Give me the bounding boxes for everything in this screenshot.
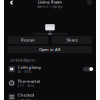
staticText: On · 80% bbox=[17, 70, 30, 74]
button[interactable]: Checked bbox=[8, 90, 91, 100]
staticText: Rescan bbox=[21, 37, 35, 43]
button[interactable]: Ceiling lamp bbox=[8, 62, 91, 76]
staticText: Thermostat bbox=[17, 78, 40, 84]
staticText: Checked bbox=[17, 92, 33, 98]
staticText: 21°C · Auto bbox=[17, 84, 34, 87]
staticText: Living Room bbox=[38, 0, 62, 4]
staticText: Scanned 2 days ago bbox=[37, 5, 63, 8]
staticText: Share bbox=[66, 37, 77, 43]
button[interactable]: Rescan bbox=[7, 36, 48, 44]
button[interactable]: Thermostat bbox=[8, 76, 91, 90]
button[interactable]: Share bbox=[51, 36, 92, 44]
staticText: Linked objects bbox=[9, 57, 35, 63]
staticText: Ceiling lamp bbox=[17, 64, 40, 70]
button[interactable]: Back bbox=[8, 0, 15, 6]
button[interactable]: Open in AR bbox=[7, 46, 92, 53]
staticText: 2 min ago bbox=[17, 98, 31, 100]
staticText: Open in AR bbox=[39, 47, 61, 52]
button[interactable]: More bbox=[87, 0, 92, 5]
